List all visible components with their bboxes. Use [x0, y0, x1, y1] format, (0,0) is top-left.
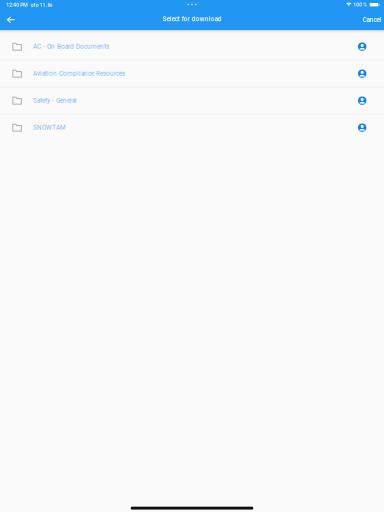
button[interactable]: Cancel [355, 10, 384, 29]
button[interactable]: Back [0, 11, 21, 29]
button[interactable]: SNOWTAM [0, 114, 384, 141]
staticText: Aviation Compliance Resources [33, 70, 125, 77]
button[interactable]: Aviation Compliance Resources [0, 60, 384, 87]
staticText: Select for download [162, 15, 221, 23]
staticText: 100 % [353, 2, 367, 8]
button[interactable]: AC - On Board Documents [0, 33, 384, 60]
staticText: AC - On Board Documents [33, 43, 109, 50]
staticText: Safety - General [33, 97, 77, 104]
staticText: SNOWTAM [33, 124, 66, 131]
staticText: uto 11. lis [31, 2, 53, 8]
button[interactable]: Safety - General [0, 87, 384, 114]
staticText: 12:40 PM [6, 2, 28, 8]
staticText: Cancel [362, 16, 381, 23]
